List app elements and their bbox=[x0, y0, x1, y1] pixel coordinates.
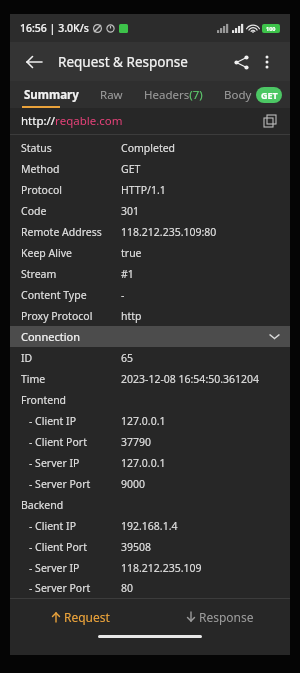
button[interactable]: Body bbox=[220, 81, 256, 108]
staticText: Body bbox=[224, 87, 252, 103]
button[interactable]: Connection bbox=[10, 326, 290, 347]
button[interactable]: - Client Port bbox=[10, 536, 290, 557]
button[interactable]: More options bbox=[254, 49, 280, 75]
button[interactable]: Proxy Protocol bbox=[10, 305, 290, 326]
staticText: 127.0.0.1 bbox=[121, 414, 166, 428]
staticText: Time bbox=[21, 372, 121, 386]
staticText: Request & Response bbox=[58, 53, 188, 71]
button[interactable]: Response bbox=[150, 599, 290, 635]
button[interactable]: Code bbox=[10, 200, 290, 221]
button[interactable]: - Server Port bbox=[10, 578, 290, 598]
button[interactable]: Copy URL bbox=[260, 111, 280, 131]
staticText: Method bbox=[21, 162, 121, 176]
staticText: 80 bbox=[121, 581, 134, 595]
staticText: Keep Alive bbox=[21, 246, 121, 260]
staticText: 301 bbox=[121, 204, 140, 218]
staticText: 118.212.235.109:80 bbox=[121, 225, 217, 239]
staticText: 39508 bbox=[121, 540, 152, 554]
staticText: 127.0.0.1 bbox=[121, 456, 166, 470]
staticText: 2023-12-08 16:54:50.361204 bbox=[121, 372, 260, 386]
staticText: Frontend bbox=[21, 393, 121, 407]
staticText: 118.212.235.109 bbox=[121, 561, 202, 575]
button[interactable]: Time bbox=[10, 368, 290, 389]
staticText: Raw bbox=[100, 87, 123, 103]
staticText: 192.168.1.4 bbox=[121, 519, 178, 533]
button[interactable]: Request bbox=[10, 599, 150, 635]
staticText: HTTP/1.1 bbox=[121, 183, 166, 197]
button[interactable]: Backend bbox=[10, 494, 290, 515]
staticText: ID bbox=[21, 351, 121, 365]
button[interactable]: Remote Address bbox=[10, 221, 290, 242]
staticText: - Client IP bbox=[29, 519, 121, 533]
button[interactable]: Raw bbox=[96, 81, 127, 108]
button[interactable]: http://reqable.com bbox=[10, 108, 290, 134]
staticText: 37790 bbox=[121, 435, 152, 449]
staticText: - bbox=[121, 288, 125, 302]
button[interactable]: - Client Port bbox=[10, 431, 290, 452]
staticText: GET bbox=[261, 89, 278, 101]
staticText: Proxy Protocol bbox=[21, 309, 121, 323]
staticText: 100 bbox=[266, 25, 276, 32]
staticText: http bbox=[121, 309, 142, 323]
staticText: - Client IP bbox=[29, 414, 121, 428]
staticText: - Client Port bbox=[29, 540, 121, 554]
staticText: Headers(7) bbox=[144, 87, 203, 103]
staticText: Summary bbox=[24, 87, 79, 103]
staticText: GET bbox=[121, 162, 141, 176]
staticText: Completed bbox=[121, 141, 176, 155]
staticText: Code bbox=[21, 204, 121, 218]
staticText: http://reqable.com bbox=[21, 113, 123, 129]
staticText: - Server Port bbox=[29, 477, 121, 491]
button[interactable]: Share bbox=[228, 49, 254, 75]
staticText: 16:56 | 3.0K/s bbox=[20, 21, 89, 35]
button[interactable]: ID bbox=[10, 347, 290, 368]
button[interactable]: Summary bbox=[20, 81, 83, 108]
button[interactable]: - Server Port bbox=[10, 473, 290, 494]
staticText: Status bbox=[21, 141, 121, 155]
staticText: 65 bbox=[121, 351, 134, 365]
staticText: #1 bbox=[121, 267, 134, 281]
staticText: - Server IP bbox=[29, 456, 121, 470]
button[interactable]: - Client IP bbox=[10, 515, 290, 536]
staticText: Protocol bbox=[21, 183, 121, 197]
button[interactable]: Stream bbox=[10, 263, 290, 284]
staticText: Backend bbox=[21, 498, 121, 512]
button[interactable]: Headers(7) bbox=[140, 81, 207, 108]
staticText: Response bbox=[199, 609, 254, 625]
button[interactable]: GET bbox=[256, 87, 282, 103]
staticText: - Server Port bbox=[29, 581, 121, 595]
button[interactable]: - Server IP bbox=[10, 557, 290, 578]
button[interactable]: - Client IP bbox=[10, 410, 290, 431]
staticText: - Client Port bbox=[29, 435, 121, 449]
staticText: Stream bbox=[21, 267, 121, 281]
staticText: Connection bbox=[21, 329, 80, 344]
staticText: Content Type bbox=[21, 288, 121, 302]
staticText: true bbox=[121, 246, 142, 260]
button[interactable]: Status bbox=[10, 137, 290, 158]
button[interactable]: - Server IP bbox=[10, 452, 290, 473]
staticText: - Server IP bbox=[29, 561, 121, 575]
staticText: 9000 bbox=[121, 477, 146, 491]
staticText: Remote Address bbox=[21, 225, 121, 239]
button[interactable]: Back bbox=[22, 50, 46, 74]
button[interactable]: Frontend bbox=[10, 389, 290, 410]
staticText: Request bbox=[64, 609, 110, 625]
button[interactable]: Method bbox=[10, 158, 290, 179]
button[interactable]: Keep Alive bbox=[10, 242, 290, 263]
button[interactable]: Content Type bbox=[10, 284, 290, 305]
button[interactable]: Protocol bbox=[10, 179, 290, 200]
